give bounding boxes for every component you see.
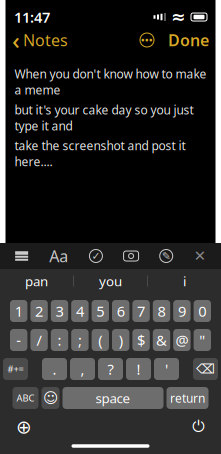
button[interactable]: ABC bbox=[12, 387, 38, 409]
staticText: @ bbox=[175, 330, 188, 350]
button[interactable]: ! bbox=[126, 358, 151, 380]
button[interactable]: pan bbox=[0, 269, 73, 293]
button[interactable]: : bbox=[51, 329, 68, 351]
staticText: space bbox=[95, 389, 130, 407]
staticText: ✎ bbox=[162, 250, 171, 262]
button[interactable]: 8 bbox=[153, 300, 170, 322]
button[interactable]: / bbox=[30, 329, 48, 351]
staticText: ' bbox=[165, 359, 168, 379]
staticText: you bbox=[99, 272, 122, 290]
staticText: ‹ bbox=[12, 24, 20, 56]
staticText: ✓ bbox=[91, 250, 100, 262]
button[interactable]: " bbox=[194, 329, 211, 351]
staticText: ✕ bbox=[194, 248, 206, 264]
button[interactable]: return bbox=[166, 387, 208, 409]
staticText: / bbox=[37, 330, 42, 350]
button[interactable]: ; bbox=[71, 329, 89, 351]
button[interactable]: Emoji bbox=[41, 387, 59, 409]
button[interactable]: Delete bbox=[193, 358, 218, 380]
button[interactable]: space bbox=[62, 387, 163, 409]
staticText: When you don't know how to make a meme bbox=[14, 66, 206, 98]
staticText: 9 bbox=[178, 301, 186, 321]
staticText: pan bbox=[25, 272, 48, 290]
staticText: : bbox=[57, 330, 61, 350]
button[interactable]: Text format bbox=[43, 239, 74, 273]
button[interactable]: Close keyboard bbox=[188, 242, 212, 270]
button[interactable]: More options bbox=[135, 28, 159, 52]
staticText: " bbox=[199, 330, 205, 350]
button[interactable]: Insert table bbox=[9, 245, 34, 267]
staticText: ≈ bbox=[171, 7, 186, 27]
staticText: - bbox=[16, 330, 21, 350]
staticText: i bbox=[183, 272, 186, 290]
button[interactable]: Checklist bbox=[83, 243, 108, 268]
button[interactable]: Dictation bbox=[186, 413, 211, 441]
staticText: return bbox=[170, 390, 205, 406]
button[interactable]: 5 bbox=[92, 300, 109, 322]
button[interactable]: ( bbox=[92, 329, 109, 351]
button[interactable]: @ bbox=[173, 329, 191, 351]
staticText: Notes bbox=[23, 29, 68, 51]
button[interactable]: Next keyboard bbox=[10, 410, 38, 444]
staticText: 6 bbox=[117, 301, 125, 321]
staticText: but it's your cake day so you just type … bbox=[14, 102, 193, 134]
button[interactable]: ) bbox=[112, 329, 129, 351]
staticText: , bbox=[80, 359, 84, 379]
staticText: 8 bbox=[157, 301, 165, 321]
button[interactable]: Done bbox=[159, 25, 218, 55]
staticText: 4 bbox=[76, 301, 84, 321]
staticText: Done bbox=[168, 29, 209, 51]
button[interactable]: , bbox=[70, 358, 95, 380]
staticText: ABC bbox=[16, 392, 34, 404]
staticText: ? bbox=[107, 359, 113, 379]
staticText: 1 bbox=[15, 301, 23, 321]
button[interactable]: . bbox=[42, 358, 67, 380]
staticText: 0 bbox=[198, 301, 206, 321]
staticText: ☺ bbox=[43, 390, 58, 406]
staticText: ( bbox=[98, 330, 102, 350]
button[interactable]: 3 bbox=[51, 300, 68, 322]
staticText: . bbox=[52, 359, 56, 379]
staticText: 2 bbox=[35, 301, 43, 321]
button[interactable]: ‹ bbox=[3, 20, 77, 60]
button[interactable]: #+= bbox=[3, 358, 28, 380]
button[interactable]: ? bbox=[98, 358, 123, 380]
button[interactable]: 4 bbox=[71, 300, 89, 322]
button[interactable]: i bbox=[148, 269, 221, 293]
button[interactable]: 1 bbox=[10, 300, 27, 322]
staticText: Aa bbox=[49, 245, 68, 267]
button[interactable]: - bbox=[10, 329, 27, 351]
staticText: #+= bbox=[7, 363, 23, 375]
button[interactable]: Camera bbox=[118, 245, 145, 267]
staticText: 3 bbox=[55, 301, 63, 321]
button[interactable]: 2 bbox=[30, 300, 48, 322]
staticText: & bbox=[156, 330, 167, 350]
staticText: ; bbox=[78, 330, 82, 350]
staticText: $ bbox=[137, 330, 145, 350]
staticText: 7 bbox=[137, 301, 145, 321]
staticText: ) bbox=[119, 330, 123, 350]
button[interactable]: & bbox=[153, 329, 170, 351]
button[interactable]: you bbox=[74, 269, 147, 293]
button[interactable]: ' bbox=[154, 358, 179, 380]
staticText: 11:47 bbox=[14, 7, 50, 27]
button[interactable]: 0 bbox=[194, 300, 211, 322]
staticText: ⏻ bbox=[192, 419, 205, 435]
staticText: ••• bbox=[141, 34, 153, 46]
button[interactable]: 6 bbox=[112, 300, 129, 322]
staticText: ⌫ bbox=[196, 361, 215, 376]
staticText: 5 bbox=[96, 301, 104, 321]
button[interactable]: $ bbox=[132, 329, 150, 351]
button[interactable]: 7 bbox=[132, 300, 150, 322]
staticText: take the screenshot and post it here.... bbox=[14, 138, 185, 170]
button[interactable]: Markup bbox=[154, 243, 179, 268]
button[interactable]: 9 bbox=[173, 300, 191, 322]
staticText: ⊕ bbox=[16, 416, 32, 438]
staticText: ! bbox=[136, 359, 140, 379]
